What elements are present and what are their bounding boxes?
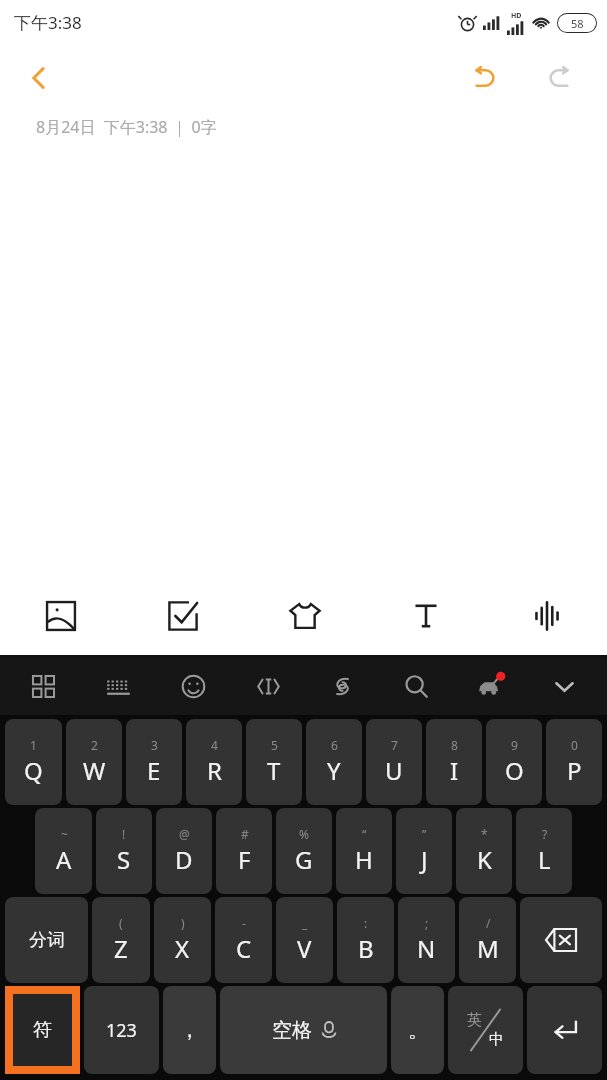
staticText: Q <box>24 754 43 787</box>
button[interactable]: 4 <box>186 719 242 805</box>
staticText: ; <box>425 915 429 931</box>
button[interactable]: Keyboard <box>81 658 156 715</box>
button[interactable]: / <box>459 897 516 983</box>
button[interactable]: Emoji <box>156 658 231 715</box>
button[interactable]: Apps <box>6 658 81 715</box>
staticText: P <box>567 754 582 787</box>
button[interactable]: ” <box>396 808 452 894</box>
staticText: E <box>147 754 161 787</box>
staticText: J <box>421 843 428 876</box>
button[interactable]: Search <box>379 658 453 715</box>
button[interactable]: Switch language <box>448 986 523 1074</box>
button[interactable]: @ <box>156 808 212 894</box>
button[interactable]: 6 <box>306 719 362 805</box>
staticText: F <box>238 843 251 876</box>
button[interactable]: Style <box>244 577 365 655</box>
staticText: N <box>417 932 436 965</box>
button[interactable]: ? <box>516 808 572 894</box>
button[interactable]: 5 <box>246 719 302 805</box>
staticText: 9 <box>511 737 518 753</box>
button[interactable]: Hide keyboard <box>527 658 601 715</box>
button[interactable]: 7 <box>366 719 422 805</box>
staticText: % <box>299 826 309 842</box>
button[interactable]: 符 <box>13 994 72 1066</box>
button[interactable]: * <box>456 808 512 894</box>
button[interactable]: 2 <box>66 719 122 805</box>
button[interactable]: 1 <box>5 719 62 805</box>
button[interactable]: Theme <box>453 658 527 715</box>
staticText: 。 <box>408 1018 428 1043</box>
staticText: @ <box>179 826 190 842</box>
staticText: Y <box>327 754 341 787</box>
button[interactable]: Checklist <box>122 577 244 655</box>
button[interactable]: ~ <box>35 808 92 894</box>
staticText: O <box>505 754 524 787</box>
staticText: : <box>364 915 368 931</box>
button[interactable]: Text format <box>365 577 486 655</box>
button[interactable]: Undo <box>459 52 511 104</box>
button[interactable]: # <box>216 808 272 894</box>
button[interactable]: Back <box>14 53 64 103</box>
staticText: 1 <box>30 737 37 753</box>
staticText: R <box>207 754 222 787</box>
button[interactable]: ; <box>398 897 455 983</box>
button[interactable]: 9 <box>486 719 542 805</box>
staticText: K <box>477 843 492 876</box>
button[interactable]: Enter <box>527 986 602 1074</box>
staticText: 0 <box>571 737 578 753</box>
staticText: 英 <box>448 1011 501 1030</box>
staticText: 空格 <box>272 1018 312 1043</box>
staticText: X <box>175 932 190 965</box>
staticText: 58 <box>571 16 584 31</box>
staticText: ) <box>181 915 185 931</box>
button[interactable]: 。 <box>391 986 444 1074</box>
button[interactable]: ) <box>154 897 211 983</box>
staticText: V <box>297 932 312 965</box>
staticText: * <box>481 826 488 842</box>
button[interactable]: 分词 <box>5 897 88 983</box>
button[interactable]: ! <box>96 808 152 894</box>
staticText: ! <box>122 826 126 842</box>
button[interactable]: 8 <box>426 719 482 805</box>
staticText: S <box>117 843 131 876</box>
staticText: D <box>175 843 193 876</box>
staticText: “ <box>362 826 367 842</box>
button[interactable]: 空格 <box>220 986 387 1074</box>
button[interactable]: % <box>276 808 332 894</box>
staticText: L <box>538 843 551 876</box>
staticText: 下午3:38 <box>14 11 82 34</box>
button[interactable]: Backspace <box>520 897 602 983</box>
staticText: 123 <box>106 1018 137 1043</box>
staticText: G <box>295 843 313 876</box>
button[interactable]: “ <box>336 808 392 894</box>
button[interactable]: ( <box>92 897 150 983</box>
button[interactable]: : <box>337 897 394 983</box>
button[interactable]: 3 <box>126 719 182 805</box>
staticText: ~ <box>61 826 68 842</box>
button[interactable]: _ <box>276 897 333 983</box>
button[interactable]: Move cursor <box>231 658 305 715</box>
staticText: 6 <box>331 737 338 753</box>
staticText: ( <box>119 915 123 931</box>
button[interactable]: ， <box>163 986 216 1074</box>
button[interactable]: Clipboard <box>305 658 379 715</box>
staticText: 5 <box>271 737 278 753</box>
staticText: A <box>56 843 72 876</box>
button[interactable]: Redo <box>533 52 585 104</box>
staticText: I <box>450 754 459 787</box>
staticText: 8 <box>451 737 458 753</box>
staticText: HD <box>511 11 522 21</box>
button[interactable]: Voice <box>486 577 607 655</box>
staticText: C <box>236 932 252 965</box>
button[interactable]: - <box>215 897 272 983</box>
staticText: / <box>486 915 491 931</box>
button[interactable]: Insert image <box>0 577 122 655</box>
staticText: 分词 <box>29 929 65 952</box>
button[interactable]: 0 <box>546 719 602 805</box>
staticText: 2 <box>91 737 98 753</box>
staticText: # <box>241 826 249 842</box>
button[interactable]: 123 <box>84 986 159 1074</box>
staticText: ” <box>422 826 427 842</box>
staticText: U <box>385 754 403 787</box>
staticText: 8月24日 下午3:38 ｜ 0字 <box>36 116 217 138</box>
